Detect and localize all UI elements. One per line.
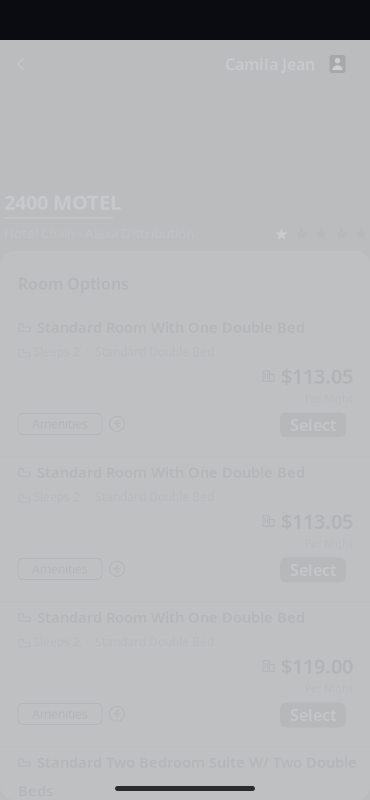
button[interactable]: Select xyxy=(280,702,346,727)
button[interactable]: Select xyxy=(280,557,346,582)
staticText: $119.00 xyxy=(281,653,353,679)
button[interactable]: Amenities xyxy=(18,700,125,727)
staticText: Standard Room With One Double Bed xyxy=(37,607,305,627)
staticText: 2400 MOTEL xyxy=(4,189,121,215)
button[interactable]: Select xyxy=(280,412,346,437)
staticText: Standard Room With One Double Bed xyxy=(37,317,305,337)
staticText: Beds xyxy=(18,781,53,800)
button[interactable]: Amenities xyxy=(18,555,125,582)
staticText: Camila Jean xyxy=(225,53,315,75)
staticText: Standard Room With One Double Bed xyxy=(37,462,305,482)
staticText: $113.05 xyxy=(281,508,353,534)
button[interactable]: Camila Jean profile xyxy=(209,43,370,85)
staticText: Amenities xyxy=(32,706,88,722)
staticText: Select xyxy=(290,414,336,435)
button[interactable]: Standard Two Bedroom Suite W/ Two Double xyxy=(0,747,370,800)
staticText: Select xyxy=(290,559,336,580)
staticText: Select xyxy=(290,704,336,725)
staticText: Room Options xyxy=(18,273,129,294)
staticText: Amenities xyxy=(32,416,88,432)
staticText: $113.05 xyxy=(281,363,353,389)
staticText: Standard Two Bedroom Suite W/ Two Double xyxy=(37,752,357,772)
staticText: Amenities xyxy=(32,561,88,577)
button[interactable]: Amenities xyxy=(18,410,125,437)
